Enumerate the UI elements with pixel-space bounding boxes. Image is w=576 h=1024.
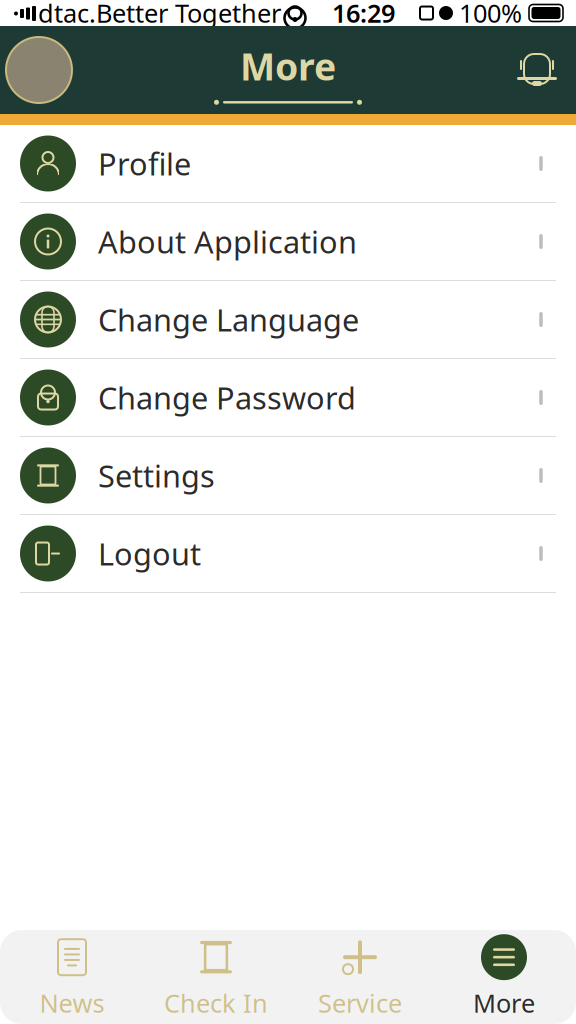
staticText: News [39, 986, 104, 1020]
staticText: Logout [98, 533, 201, 574]
staticText: Settings [98, 455, 215, 496]
button[interactable]: About Application [0, 203, 576, 281]
staticText: 16:29 [332, 0, 395, 30]
staticText: More [473, 986, 535, 1020]
staticText: dtac.Better Together [38, 0, 281, 30]
staticText: Change Password [98, 377, 356, 418]
staticText: Service [318, 986, 402, 1020]
button[interactable]: Notifications [498, 26, 576, 114]
button[interactable]: Logout [0, 515, 576, 593]
staticText: Check In [164, 986, 268, 1020]
staticText: About Application [98, 221, 357, 262]
staticText: More [240, 41, 336, 91]
button[interactable]: More [432, 930, 576, 1024]
button[interactable]: Change Password [0, 359, 576, 437]
button[interactable]: Service [288, 930, 432, 1024]
button[interactable]: Settings [0, 437, 576, 515]
staticText: Change Language [98, 299, 359, 340]
button[interactable]: Change Language [0, 281, 576, 359]
staticText: 100% [459, 0, 522, 30]
staticText: Profile [98, 143, 191, 184]
button[interactable]: Profile [0, 125, 576, 203]
button[interactable]: News [0, 930, 144, 1024]
button[interactable]: Profile photo [0, 26, 78, 114]
button[interactable]: Check In [144, 930, 288, 1024]
